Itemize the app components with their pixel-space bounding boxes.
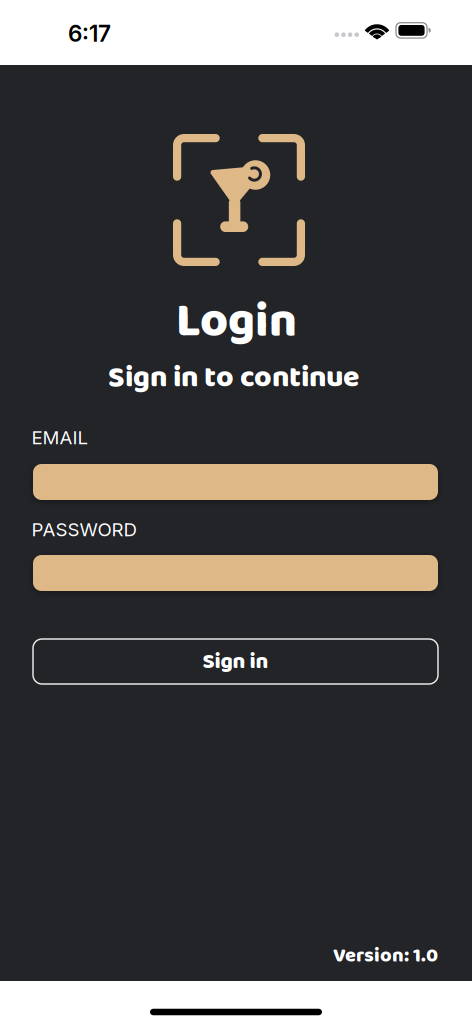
staticText: PASSWORD [31,518,136,540]
staticText: Sign in to continue [108,354,359,402]
staticText: Sign in [202,644,268,680]
staticText: Version: 1.0 [333,940,438,972]
button[interactable] [33,555,438,591]
button[interactable]: Sign in [33,639,438,684]
staticText: Login [176,284,297,360]
staticText: 6:17 [68,20,111,47]
button[interactable] [33,464,438,500]
staticText: EMAIL [31,426,88,448]
